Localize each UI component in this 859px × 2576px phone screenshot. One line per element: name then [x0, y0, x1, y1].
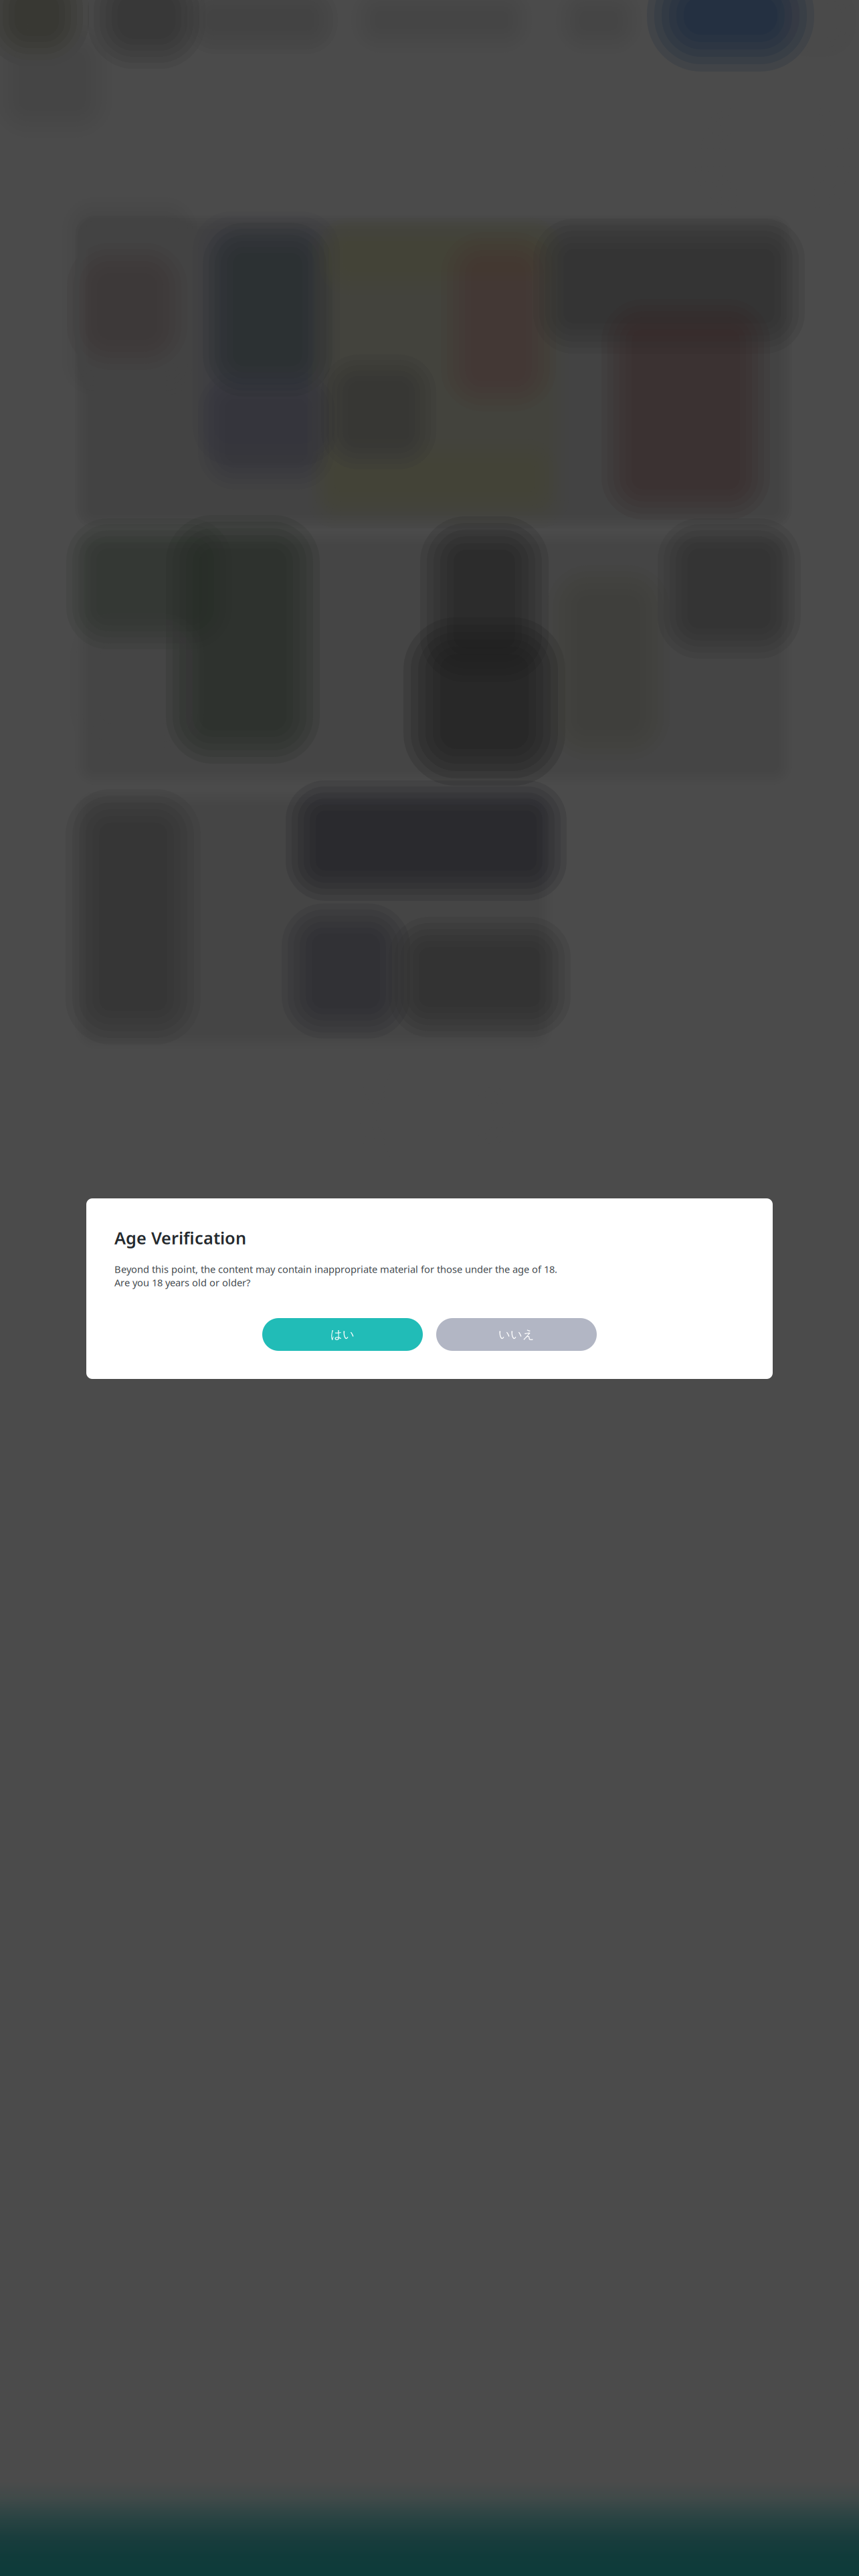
staticText: はい — [330, 1327, 355, 1342]
button[interactable]: はい — [262, 1318, 423, 1351]
staticText: Beyond this point, the content may conta… — [114, 1263, 557, 1276]
staticText: いいえ — [498, 1327, 535, 1342]
staticText: Age Verification — [114, 1226, 246, 1249]
button[interactable]: いいえ — [436, 1318, 597, 1351]
staticText: Are you 18 years old or older? — [114, 1276, 250, 1289]
